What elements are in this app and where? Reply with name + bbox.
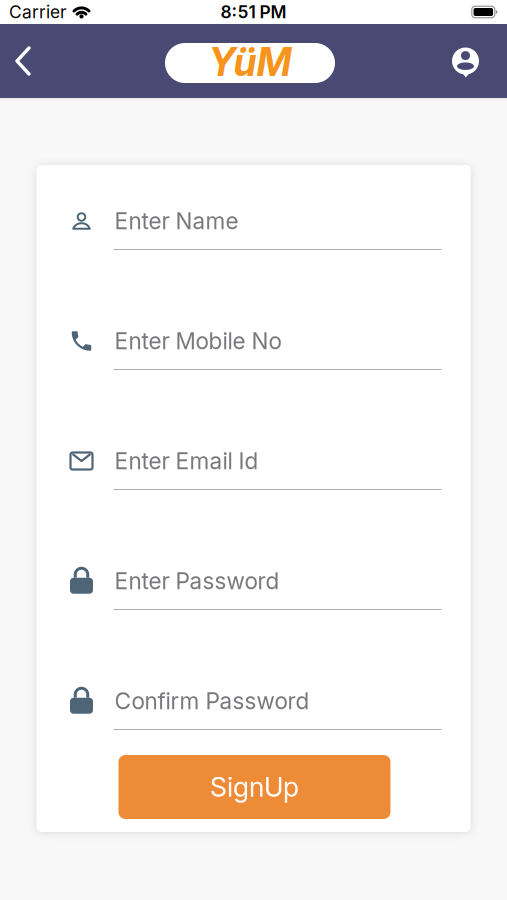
button[interactable]: Back xyxy=(0,30,49,92)
button[interactable]: Enter Name xyxy=(70,207,470,250)
button[interactable]: Yum home xyxy=(165,40,335,86)
staticText: Enter Mobile No xyxy=(114,327,281,355)
staticText: Carrier xyxy=(9,1,67,22)
staticText: 8:51 xyxy=(220,1,255,22)
button[interactable]: SignUp xyxy=(118,755,390,819)
button[interactable]: Account xyxy=(440,30,507,91)
staticText: PM xyxy=(259,1,286,22)
button[interactable]: Confirm Password xyxy=(70,687,470,730)
staticText: Enter Password xyxy=(114,567,279,595)
staticText: Enter Name xyxy=(114,207,238,235)
button[interactable]: Enter Password xyxy=(70,567,470,610)
staticText: SignUp xyxy=(210,771,299,803)
staticText: Enter Email Id xyxy=(114,447,258,475)
button[interactable]: Enter Mobile No xyxy=(70,327,470,370)
staticText: YüM xyxy=(208,39,291,85)
button[interactable]: Enter Email Id xyxy=(70,447,470,490)
staticText: Confirm Password xyxy=(114,687,309,715)
